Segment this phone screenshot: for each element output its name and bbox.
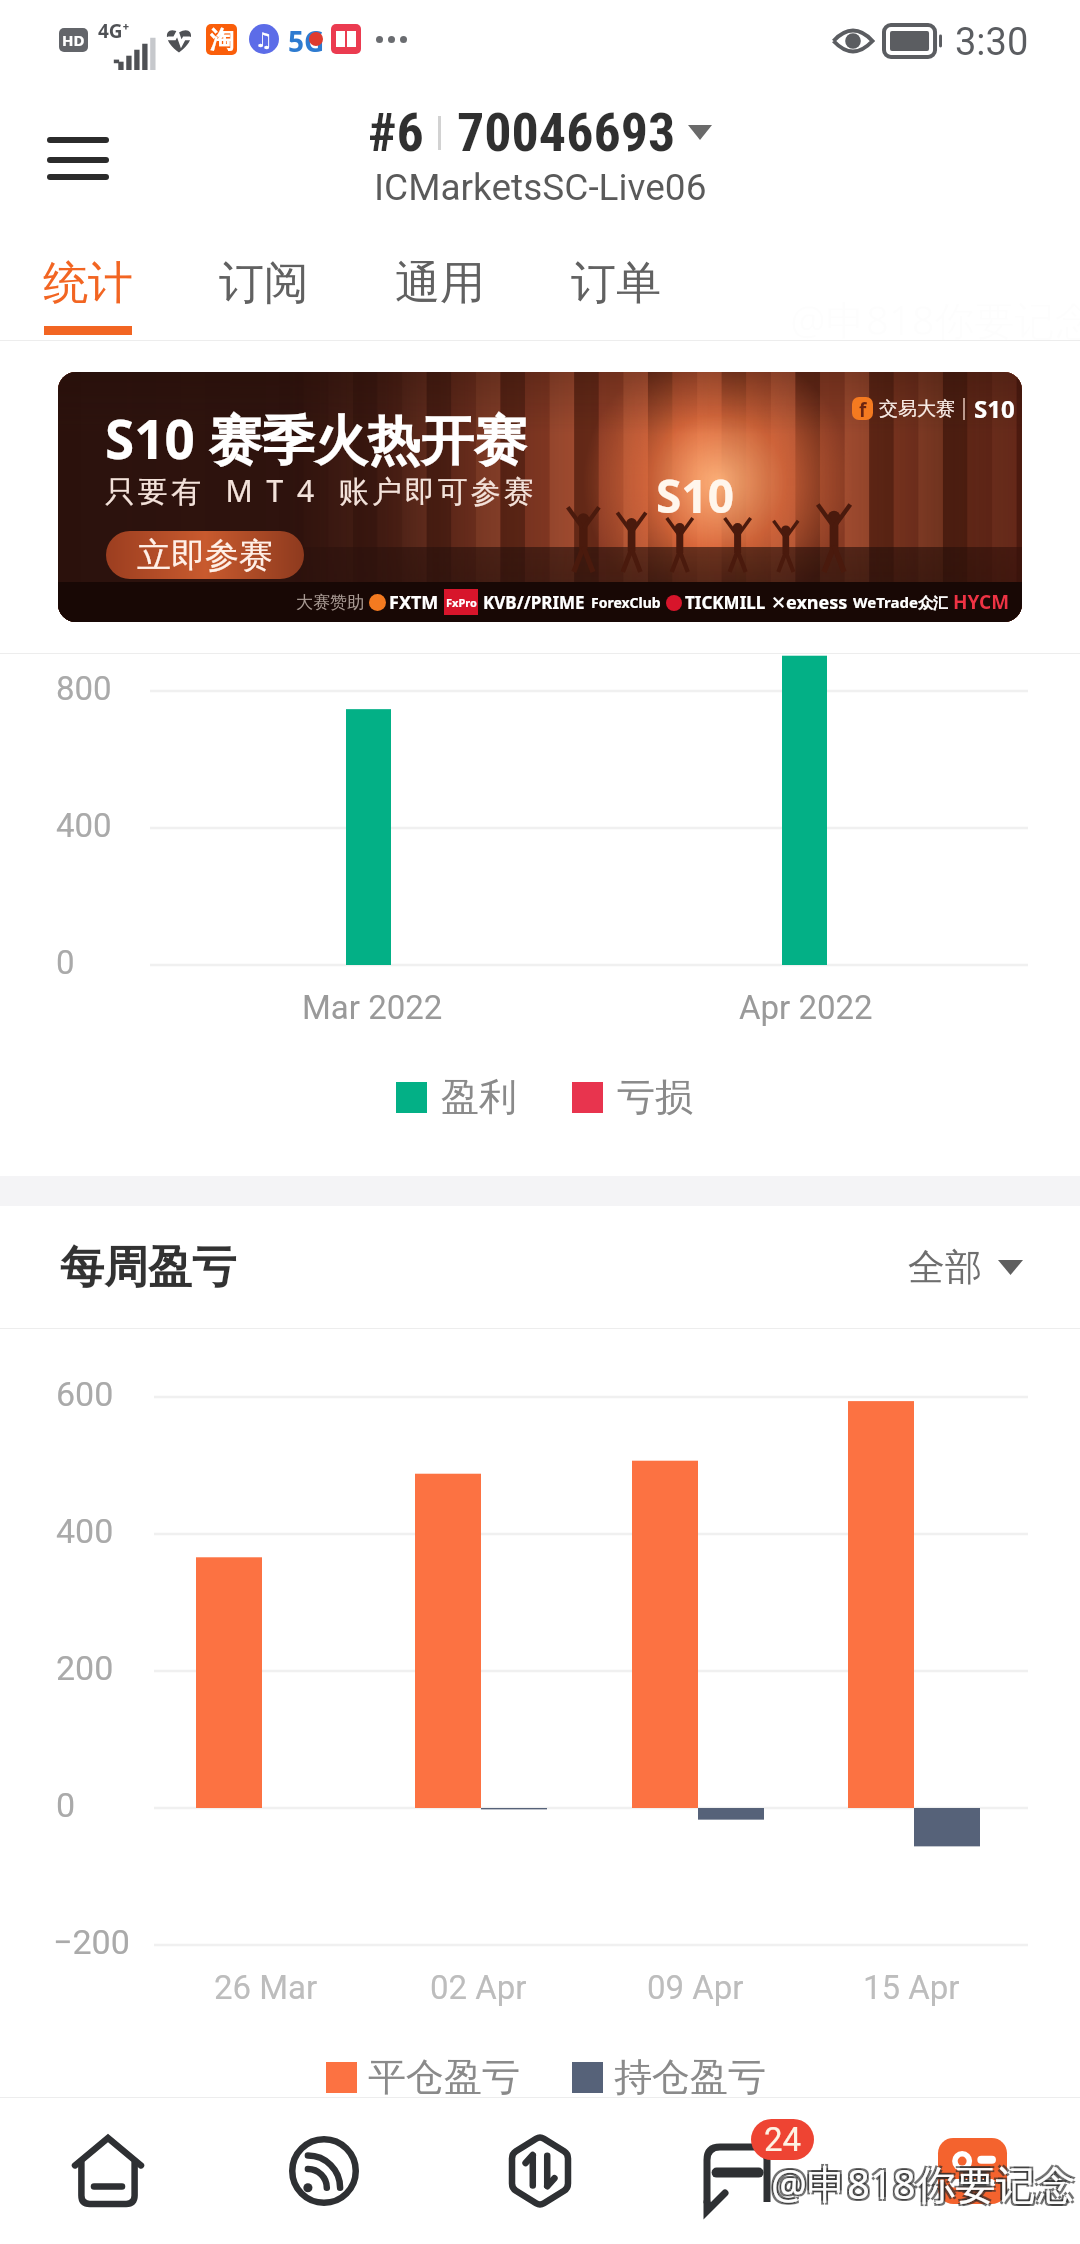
staticText: 0 — [56, 943, 75, 982]
staticText: KVB//PRIME — [483, 591, 585, 614]
staticText: 大赛赞助 — [296, 592, 364, 613]
staticText: TICKMILL — [685, 591, 766, 614]
staticText: 24 — [764, 2120, 802, 2159]
button[interactable]: Menu — [40, 122, 116, 198]
staticText: HD — [62, 30, 85, 50]
staticText: FXTM — [389, 590, 439, 615]
staticText: ♫ — [255, 28, 273, 51]
staticText: 600 — [56, 1374, 114, 1414]
staticText: 4G⁺ — [98, 18, 130, 44]
staticText: ICMarketsSC-Live06 — [374, 166, 707, 209]
staticText: 订单 — [571, 255, 661, 312]
staticText: Apr 2022 — [739, 988, 873, 1027]
button[interactable]: Home — [0, 2098, 216, 2244]
button[interactable]: Trade — [432, 2098, 648, 2244]
staticText: S10 赛季火热开赛 — [105, 402, 527, 474]
staticText: 400 — [56, 1511, 114, 1551]
staticText: WeTrade众汇 — [853, 592, 948, 612]
staticText: 每周盈亏 — [60, 1240, 236, 1295]
staticText: HYCM — [953, 589, 1010, 615]
staticText: #6 — [368, 101, 424, 164]
staticText: 通用 — [395, 255, 485, 312]
staticText: 02 Apr — [430, 1968, 527, 2007]
staticText: ✕exness — [771, 590, 848, 615]
staticText: 70046693 — [457, 101, 676, 164]
button[interactable]: Messages — [648, 2098, 864, 2244]
staticText: @申818你要记念 — [773, 2158, 1078, 2213]
staticText: 平仓盈亏 — [368, 2053, 520, 2101]
staticText: FxPro — [446, 595, 477, 610]
staticText: ForexClub — [591, 593, 661, 612]
staticText: 亏损 — [617, 1073, 693, 1121]
staticText: 订阅 — [219, 255, 309, 312]
staticText: 15 Apr — [863, 1968, 960, 2007]
staticText: 400 — [56, 806, 112, 845]
staticText: S10 — [974, 392, 1015, 425]
staticText: S10 — [656, 464, 734, 527]
button[interactable]: 通用 — [352, 230, 528, 340]
staticText: 全部 — [908, 1244, 982, 1291]
button[interactable]: 订阅 — [176, 230, 352, 340]
staticText: 盈利 — [441, 1073, 517, 1121]
staticText: 0 — [56, 1785, 76, 1825]
button[interactable]: 统计 — [0, 230, 176, 340]
staticText: 持仓盈亏 — [614, 2053, 766, 2101]
staticText: 统计 — [43, 255, 133, 312]
staticText: 3:30 — [955, 20, 1029, 65]
button[interactable]: S10 — [58, 372, 1022, 622]
button[interactable]: 立即参赛 — [106, 531, 304, 579]
staticText: @申818你要记念 — [773, 2154, 1078, 2209]
button[interactable]: Profile — [864, 2098, 1080, 2244]
staticText: 200 — [56, 1648, 114, 1688]
staticText: @申818你要记念 — [769, 2154, 1074, 2209]
button[interactable]: 订单 — [528, 230, 704, 340]
staticText: 淘 — [210, 25, 234, 55]
button[interactable]: Signals — [216, 2098, 432, 2244]
staticText: 交易大赛 — [879, 397, 955, 421]
staticText: 26 Mar — [214, 1968, 318, 2007]
staticText: f — [859, 397, 867, 420]
staticText: @申818你要记念 — [769, 2158, 1074, 2213]
staticText: 立即参赛 — [137, 534, 273, 577]
staticText: −200 — [53, 1922, 130, 1962]
staticText: 5G — [288, 22, 325, 60]
staticText: 800 — [56, 669, 112, 708]
staticText: 只要有 M T 4 账户即可参赛 — [105, 470, 537, 511]
button[interactable]: 全部 — [908, 1244, 1023, 1291]
staticText: @申818你要记念 — [771, 2156, 1076, 2211]
staticText: Mar 2022 — [302, 988, 443, 1027]
staticText: 09 Apr — [647, 1968, 744, 2007]
